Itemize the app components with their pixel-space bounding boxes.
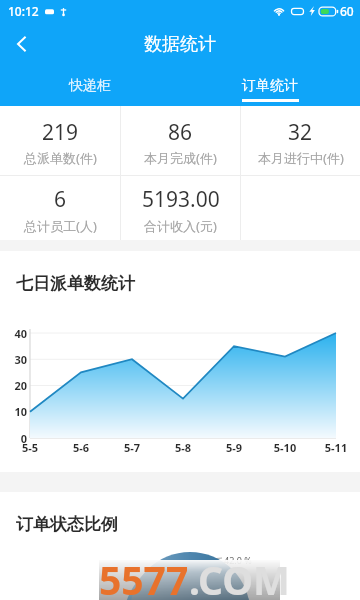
button[interactable]: 86	[121, 106, 240, 175]
staticText: 总派单数(件)	[24, 149, 97, 167]
staticText: 5-7	[115, 440, 149, 455]
staticText: 5-10	[268, 440, 302, 455]
staticText: 10:12	[8, 3, 39, 19]
button[interactable]: 5193.00	[121, 176, 240, 240]
staticText: 10	[5, 404, 27, 419]
staticText: 5-9	[217, 440, 251, 455]
staticText: 42.0 %	[224, 554, 252, 566]
staticText: .COM	[189, 553, 290, 600]
staticText: 本月完成(件)	[144, 149, 217, 167]
staticText: 本月进行中(件)	[258, 149, 344, 167]
staticText: 5193.00	[142, 185, 220, 214]
staticText: 5-6	[64, 440, 98, 455]
button[interactable]: 快递柜	[0, 66, 180, 106]
staticText: 5-8	[166, 440, 200, 455]
staticText: 40	[5, 326, 27, 341]
staticText: 86	[168, 118, 193, 147]
staticText: 七日派单数统计	[16, 273, 135, 294]
staticText: 5-5	[13, 440, 47, 455]
staticText: 数据统计	[144, 33, 216, 56]
button[interactable]: 32	[241, 106, 360, 175]
staticText: 6	[54, 185, 67, 214]
staticText: 0	[5, 431, 27, 446]
staticText: 订单状态比例	[16, 514, 118, 535]
button[interactable]: Back	[0, 22, 44, 66]
button[interactable]: 219	[0, 106, 120, 175]
staticText: 30	[5, 352, 27, 367]
staticText: 5577	[99, 553, 189, 600]
staticText: 5-11	[319, 440, 353, 455]
staticText: 20	[5, 378, 27, 393]
staticText: 219	[42, 118, 79, 147]
staticText: 订单统计	[242, 77, 298, 95]
staticText: 60	[340, 3, 354, 19]
button[interactable]: 6	[0, 176, 120, 240]
staticText: 快递柜	[69, 77, 111, 95]
staticText: 合计收入(元)	[144, 217, 217, 235]
button[interactable]: 订单统计	[180, 66, 360, 106]
staticText: 总计员工(人)	[24, 217, 97, 235]
staticText: 32	[288, 118, 313, 147]
